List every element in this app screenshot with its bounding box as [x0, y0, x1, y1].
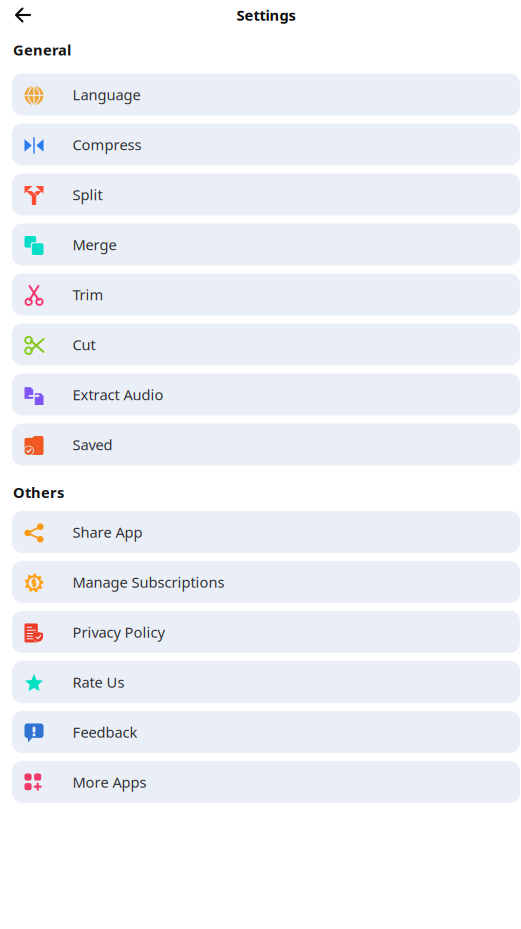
staticText: Feedback: [72, 722, 137, 742]
staticText: Cut: [72, 335, 95, 354]
button[interactable]: Share App: [12, 511, 520, 553]
staticText: Merge: [72, 235, 116, 254]
button[interactable]: Compress: [12, 123, 520, 165]
staticText: More Apps: [72, 772, 146, 792]
button[interactable]: Split: [12, 173, 520, 215]
staticText: Split: [72, 185, 102, 204]
button[interactable]: Feedback: [12, 711, 520, 753]
button[interactable]: Back: [0, 0, 42, 30]
button[interactable]: Trim: [12, 273, 520, 315]
button[interactable]: Language: [12, 73, 520, 115]
button[interactable]: Saved: [12, 423, 520, 465]
staticText: Share App: [72, 522, 142, 542]
button[interactable]: Extract Audio: [12, 373, 520, 415]
staticText: Others: [13, 482, 64, 502]
staticText: Language: [72, 85, 140, 104]
staticText: Privacy Policy: [72, 622, 164, 642]
button[interactable]: Merge: [12, 223, 520, 265]
staticText: Compress: [72, 135, 141, 154]
button[interactable]: Manage Subscriptions: [12, 561, 520, 603]
button[interactable]: Privacy Policy: [12, 611, 520, 653]
button[interactable]: Cut: [12, 323, 520, 365]
staticText: Trim: [72, 285, 103, 304]
staticText: Extract Audio: [72, 385, 163, 404]
staticText: Manage Subscriptions: [72, 572, 224, 592]
staticText: Saved: [72, 435, 112, 454]
button[interactable]: More Apps: [12, 761, 520, 803]
button[interactable]: Rate Us: [12, 661, 520, 703]
staticText: General: [13, 40, 71, 59]
staticText: Settings: [236, 5, 295, 25]
staticText: Rate Us: [72, 672, 124, 692]
